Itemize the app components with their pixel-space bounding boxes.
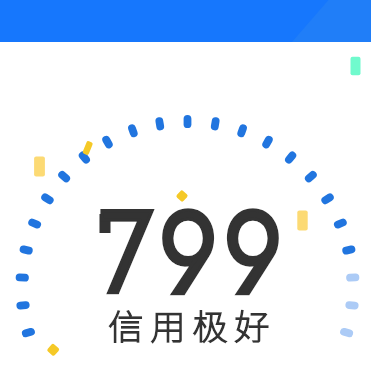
staticText: 799 [99, 167, 288, 337]
staticText: 信用极好 [108, 299, 277, 350]
staticText: 信用极好 [108, 299, 277, 350]
staticText: 799 [99, 167, 288, 337]
